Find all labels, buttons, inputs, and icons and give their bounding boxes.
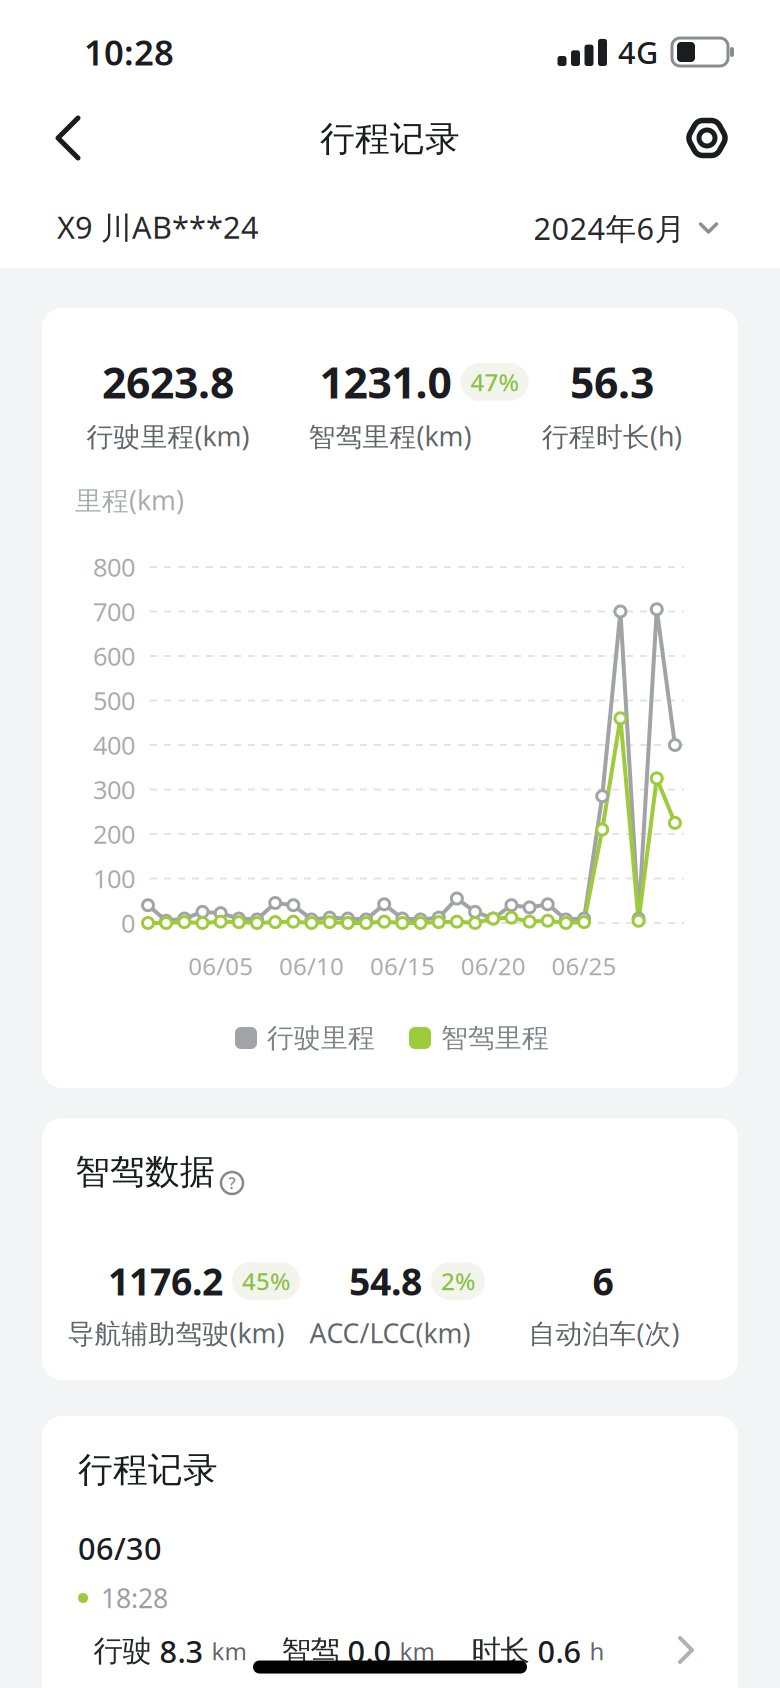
staticText: 500	[93, 684, 135, 717]
staticText: 时长	[471, 1633, 529, 1669]
staticText: 4G	[618, 32, 658, 72]
staticText: ?	[228, 1172, 235, 1194]
staticText: 1231.0	[319, 354, 451, 410]
staticText: km	[211, 1635, 246, 1667]
staticText: 06/10	[279, 950, 344, 982]
staticText: 56.3	[570, 354, 654, 410]
button[interactable]: About autopilot data	[217, 1168, 247, 1198]
staticText: 47%	[470, 366, 518, 398]
staticText: 800	[93, 550, 135, 584]
staticText: 里程(km)	[75, 482, 184, 518]
staticText: 18:28	[101, 1580, 168, 1616]
staticText: 0.0	[347, 1631, 391, 1671]
staticText: 8.3	[159, 1631, 203, 1671]
staticText: 智驾里程	[441, 1022, 549, 1054]
staticText: 智驾数据	[75, 1151, 215, 1193]
staticText: 2623.8	[102, 354, 234, 410]
staticText: 06/05	[188, 950, 253, 982]
staticText: 54.8	[349, 1256, 422, 1306]
staticText: 导航辅助驾驶(km)	[67, 1315, 284, 1351]
staticText: h	[589, 1635, 604, 1667]
staticText: 2%	[441, 1265, 475, 1297]
staticText: 行驶	[93, 1633, 151, 1669]
staticText: 自动泊车(次)	[528, 1315, 679, 1351]
staticText: km	[399, 1635, 434, 1667]
staticText: 6	[592, 1256, 613, 1306]
staticText: 行驶里程(km)	[86, 418, 249, 454]
button[interactable]: Back	[45, 110, 101, 166]
staticText: 06/30	[78, 1528, 162, 1568]
button[interactable]: 2024年6月	[533, 208, 718, 248]
staticText: 06/20	[461, 950, 526, 982]
staticText: 200	[93, 817, 135, 851]
staticText: 600	[93, 639, 135, 673]
staticText: 300	[93, 773, 135, 806]
staticText: 700	[93, 595, 135, 628]
staticText: 行程记录	[78, 1449, 218, 1491]
staticText: ACC/LCC(km)	[309, 1315, 470, 1351]
button[interactable]: Settings	[683, 114, 731, 162]
staticText: 45%	[242, 1265, 290, 1297]
staticText: 400	[93, 728, 135, 762]
staticText: 行程记录	[320, 118, 460, 160]
staticText: 10:28	[84, 29, 174, 75]
staticText: 智驾里程(km)	[308, 418, 471, 454]
staticText: 0	[121, 906, 135, 940]
staticText: 智驾	[281, 1633, 339, 1669]
staticText: X9 川AB***24	[57, 207, 259, 247]
staticText: 0.6	[537, 1631, 581, 1671]
staticText: 1176.2	[108, 1256, 223, 1306]
staticText: 2024年6月	[533, 208, 685, 248]
staticText: 行程时长(h)	[542, 418, 682, 454]
staticText: 06/15	[370, 950, 435, 982]
button[interactable]: 行驶	[50, 1618, 730, 1682]
staticText: 行驶里程	[267, 1022, 375, 1054]
staticText: 06/25	[552, 950, 617, 982]
staticText: 100	[93, 862, 135, 895]
